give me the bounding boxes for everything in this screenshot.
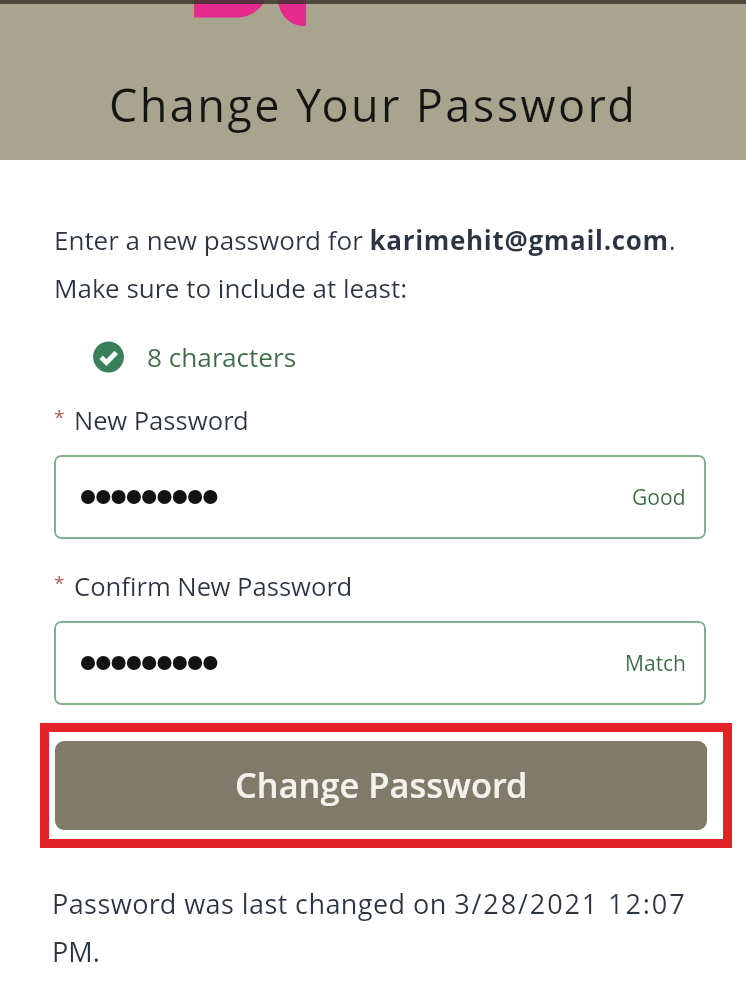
staticText: Enter a new password for karimehit@gmail… xyxy=(54,222,714,305)
other: Requirement met xyxy=(92,341,126,375)
button[interactable]: Password entry, Good xyxy=(54,455,706,539)
button[interactable]: Home xyxy=(192,0,308,28)
staticText: Match xyxy=(625,649,686,678)
button[interactable]: Password entry, Match xyxy=(54,621,706,705)
staticText: * xyxy=(54,404,65,430)
button[interactable]: Change Password xyxy=(55,741,707,830)
staticText: * xyxy=(54,570,65,596)
staticText: Change Your Password xyxy=(109,74,638,135)
staticText: Password was last changed on 3/28/2021 1… xyxy=(52,885,712,970)
staticText: Good xyxy=(632,483,686,512)
staticText: Confirm New Password xyxy=(74,569,353,604)
staticText: Change Password xyxy=(235,761,528,808)
staticText: 8 characters xyxy=(147,339,297,375)
staticText: New Password xyxy=(74,403,249,438)
